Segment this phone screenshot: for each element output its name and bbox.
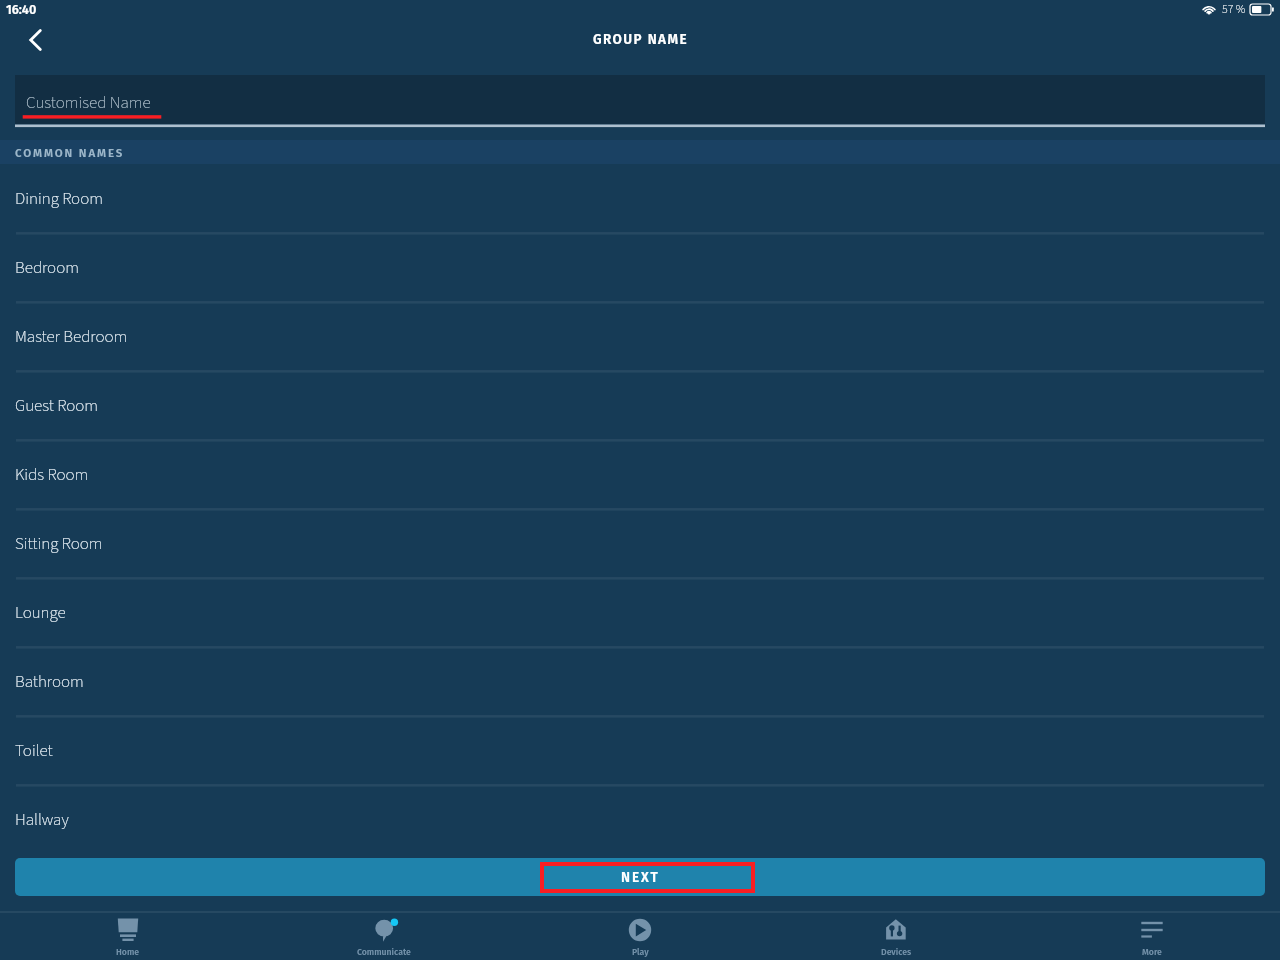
button[interactable]: NEXT [15, 858, 1265, 896]
button[interactable]: Bathroom [0, 647, 1280, 716]
button[interactable]: Play [512, 911, 768, 960]
button[interactable]: Bedroom [0, 233, 1280, 302]
staticText: Communicate [357, 947, 411, 957]
staticText: Bedroom [15, 256, 79, 280]
button[interactable]: Devices [768, 911, 1024, 960]
staticText: Dining Room [15, 187, 103, 211]
staticText: Kids Room [15, 463, 89, 487]
button[interactable]: Master Bedroom [0, 302, 1280, 371]
button[interactable]: Dining Room [0, 164, 1280, 233]
staticText: Play [632, 947, 649, 957]
button[interactable]: Kids Room [0, 440, 1280, 509]
staticText: Customised Name [26, 91, 151, 115]
button[interactable]: Guest Room [0, 371, 1280, 440]
staticText: Home [116, 947, 140, 957]
staticText: COMMON NAMES [15, 146, 125, 160]
staticText: Guest Room [15, 394, 98, 418]
staticText: More [1142, 947, 1162, 957]
button[interactable]: Back [16, 20, 56, 60]
staticText: Lounge [15, 601, 66, 625]
button[interactable] [15, 75, 1265, 124]
staticText: Master Bedroom [15, 325, 128, 349]
staticText: 16:40 [6, 2, 37, 17]
staticText: Toilet [15, 739, 53, 763]
staticText: 57 % [1222, 1, 1246, 18]
staticText: Hallway [15, 808, 69, 832]
staticText: GROUP NAME [593, 31, 688, 47]
staticText: Sitting Room [15, 532, 103, 556]
button[interactable]: Communicate [256, 911, 512, 960]
button[interactable]: Sitting Room [0, 509, 1280, 578]
button[interactable]: Toilet [0, 716, 1280, 785]
button[interactable]: Home [0, 911, 256, 960]
button[interactable]: Lounge [0, 578, 1280, 647]
button[interactable]: More [1024, 911, 1280, 960]
staticText: NEXT [621, 869, 660, 885]
staticText: Bathroom [15, 670, 84, 694]
staticText: Devices [881, 947, 912, 957]
button[interactable]: Hallway [0, 785, 1280, 854]
